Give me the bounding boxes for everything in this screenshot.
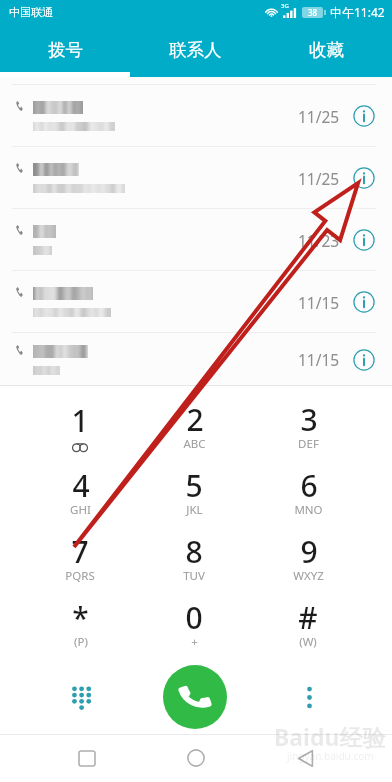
- button[interactable]: 隐藏键盘: [24, 660, 138, 734]
- staticText: 1: [71, 400, 89, 441]
- staticText: 中午11:42: [330, 4, 385, 20]
- staticText: 拨号: [48, 39, 83, 61]
- staticText: DEF: [298, 436, 319, 452]
- staticText: 8: [185, 531, 203, 572]
- button[interactable]: 1: [23, 396, 137, 462]
- button[interactable]: 2: [137, 396, 251, 462]
- button[interactable]: 8: [137, 528, 251, 594]
- staticText: 联系人: [169, 39, 222, 61]
- button[interactable]: 11/25: [0, 85, 392, 147]
- button[interactable]: 通话详情: [347, 99, 381, 133]
- button[interactable]: 主页: [174, 736, 218, 780]
- staticText: JKL: [186, 502, 203, 518]
- button[interactable]: 通话详情: [347, 285, 381, 319]
- staticText: WXYZ: [293, 568, 324, 584]
- button[interactable]: 9: [251, 528, 365, 594]
- button[interactable]: 通话详情: [347, 161, 381, 195]
- staticText: 6: [300, 465, 318, 506]
- staticText: 11/25: [298, 106, 340, 127]
- staticText: 2: [186, 399, 204, 440]
- button[interactable]: 11/15: [0, 333, 392, 386]
- button[interactable]: 返回: [283, 736, 327, 780]
- staticText: *: [72, 597, 89, 638]
- button[interactable]: 联系人: [130, 24, 261, 77]
- staticText: 4: [72, 465, 90, 506]
- staticText: TUV: [183, 568, 205, 584]
- button[interactable]: 0: [137, 594, 251, 660]
- button[interactable]: #: [251, 594, 365, 660]
- button[interactable]: 拨打电话: [163, 665, 227, 729]
- staticText: #: [298, 597, 318, 638]
- button[interactable]: 11/23: [0, 209, 392, 271]
- button[interactable]: 3: [251, 396, 365, 462]
- staticText: jingyan.baidu.com: [287, 749, 374, 763]
- staticText: 11/15: [298, 292, 340, 313]
- staticText: 3: [300, 399, 318, 440]
- staticText: Baidu经验: [274, 721, 386, 752]
- button[interactable]: 7: [23, 528, 137, 594]
- staticText: 0: [185, 597, 203, 638]
- button[interactable]: 6: [251, 462, 365, 528]
- staticText: 中国联通: [9, 5, 53, 19]
- button[interactable]: 最近任务: [65, 736, 109, 780]
- button[interactable]: 收藏: [261, 24, 392, 77]
- staticText: 38: [308, 7, 318, 18]
- staticText: GHI: [70, 502, 91, 518]
- button[interactable]: 通话详情: [347, 343, 381, 377]
- staticText: (W): [299, 634, 317, 650]
- staticText: 5: [185, 465, 203, 506]
- staticText: ABC: [183, 436, 206, 452]
- staticText: 9: [300, 531, 318, 572]
- button[interactable]: 11/15: [0, 271, 392, 333]
- button[interactable]: 5: [137, 462, 251, 528]
- staticText: 3G: [281, 2, 289, 10]
- button[interactable]: 通话详情: [347, 223, 381, 257]
- button[interactable]: 拨号: [0, 24, 130, 77]
- button[interactable]: 11/25: [0, 147, 392, 209]
- staticText: +: [191, 634, 198, 650]
- button[interactable]: 更多选项: [252, 660, 366, 734]
- button[interactable]: 4: [23, 462, 137, 528]
- button[interactable]: *: [23, 594, 137, 660]
- staticText: (P): [74, 634, 88, 650]
- staticText: 收藏: [309, 39, 344, 61]
- staticText: PQRS: [65, 568, 95, 584]
- staticText: MNO: [294, 502, 323, 518]
- staticText: 7: [71, 531, 89, 572]
- staticText: 11/23: [298, 230, 340, 251]
- staticText: 11/25: [298, 168, 340, 189]
- staticText: 11/15: [298, 349, 340, 370]
